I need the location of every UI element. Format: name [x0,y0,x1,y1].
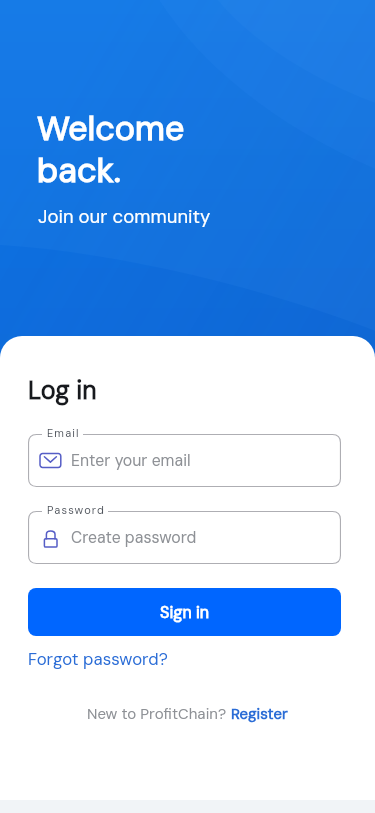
button[interactable]: Register [231,704,288,724]
staticText: Log in [28,374,97,407]
button[interactable]: Enter your email [28,434,341,487]
staticText: Sign in [160,602,210,623]
button[interactable]: Sign in [28,588,341,636]
staticText: Enter your email [71,450,191,471]
staticText: Email [47,426,80,440]
staticText: New to ProfitChain? [87,704,231,724]
staticText: Create password [71,527,197,548]
staticText: Join our community [38,205,211,229]
staticText: Forgot password? [28,648,168,670]
staticText: Password [47,503,105,517]
button[interactable]: Forgot password? [28,648,168,670]
staticText: Register [231,704,288,724]
staticText: Welcome back. [37,106,185,193]
button[interactable]: Create password [28,511,341,564]
